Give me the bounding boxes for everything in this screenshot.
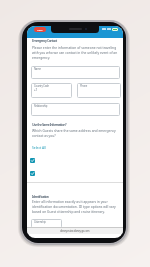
- staticText: 10:09: [37, 28, 43, 31]
- staticText: Phone: [80, 84, 88, 88]
- staticText: Enter all information exactly as it appe…: [32, 199, 108, 203]
- staticText: Please enter the information of someone …: [32, 45, 117, 49]
- staticText: Use the Same Information?: [32, 122, 67, 127]
- staticText: identification documentation. ID type op…: [32, 204, 116, 208]
- button[interactable]: 10:09: [34, 27, 46, 32]
- button[interactable]: Select All: [32, 145, 46, 149]
- button[interactable]: Name: [31, 66, 120, 79]
- staticText: Which Guests share the same address and …: [32, 128, 116, 132]
- button[interactable]: Relationship: [31, 103, 120, 116]
- staticText: Country Code: [34, 84, 49, 88]
- staticText: with you who we can contact in the unlik…: [32, 50, 118, 54]
- staticText: disneycruise.disney.go.com: [60, 229, 90, 233]
- staticText: based on Guest citizenship and cruise it…: [32, 209, 105, 213]
- staticText: contact as you?: [32, 133, 56, 137]
- button[interactable]: Country Code: [31, 83, 72, 98]
- button[interactable]: Phone: [77, 83, 121, 98]
- staticText: Emergency Contact: [32, 38, 57, 43]
- button[interactable]: [30, 158, 35, 163]
- staticText: Relationship: [34, 104, 48, 108]
- staticText: Citizenship: [34, 220, 46, 224]
- staticText: emergency.: [32, 55, 51, 59]
- button[interactable]: disneycruise.disney.go.com: [27, 227, 123, 234]
- staticText: Identification: [32, 194, 49, 199]
- button[interactable]: [30, 171, 35, 176]
- staticText: Name: [34, 67, 41, 71]
- button[interactable]: Citizenship: [31, 219, 62, 228]
- staticText: +1: [34, 88, 38, 92]
